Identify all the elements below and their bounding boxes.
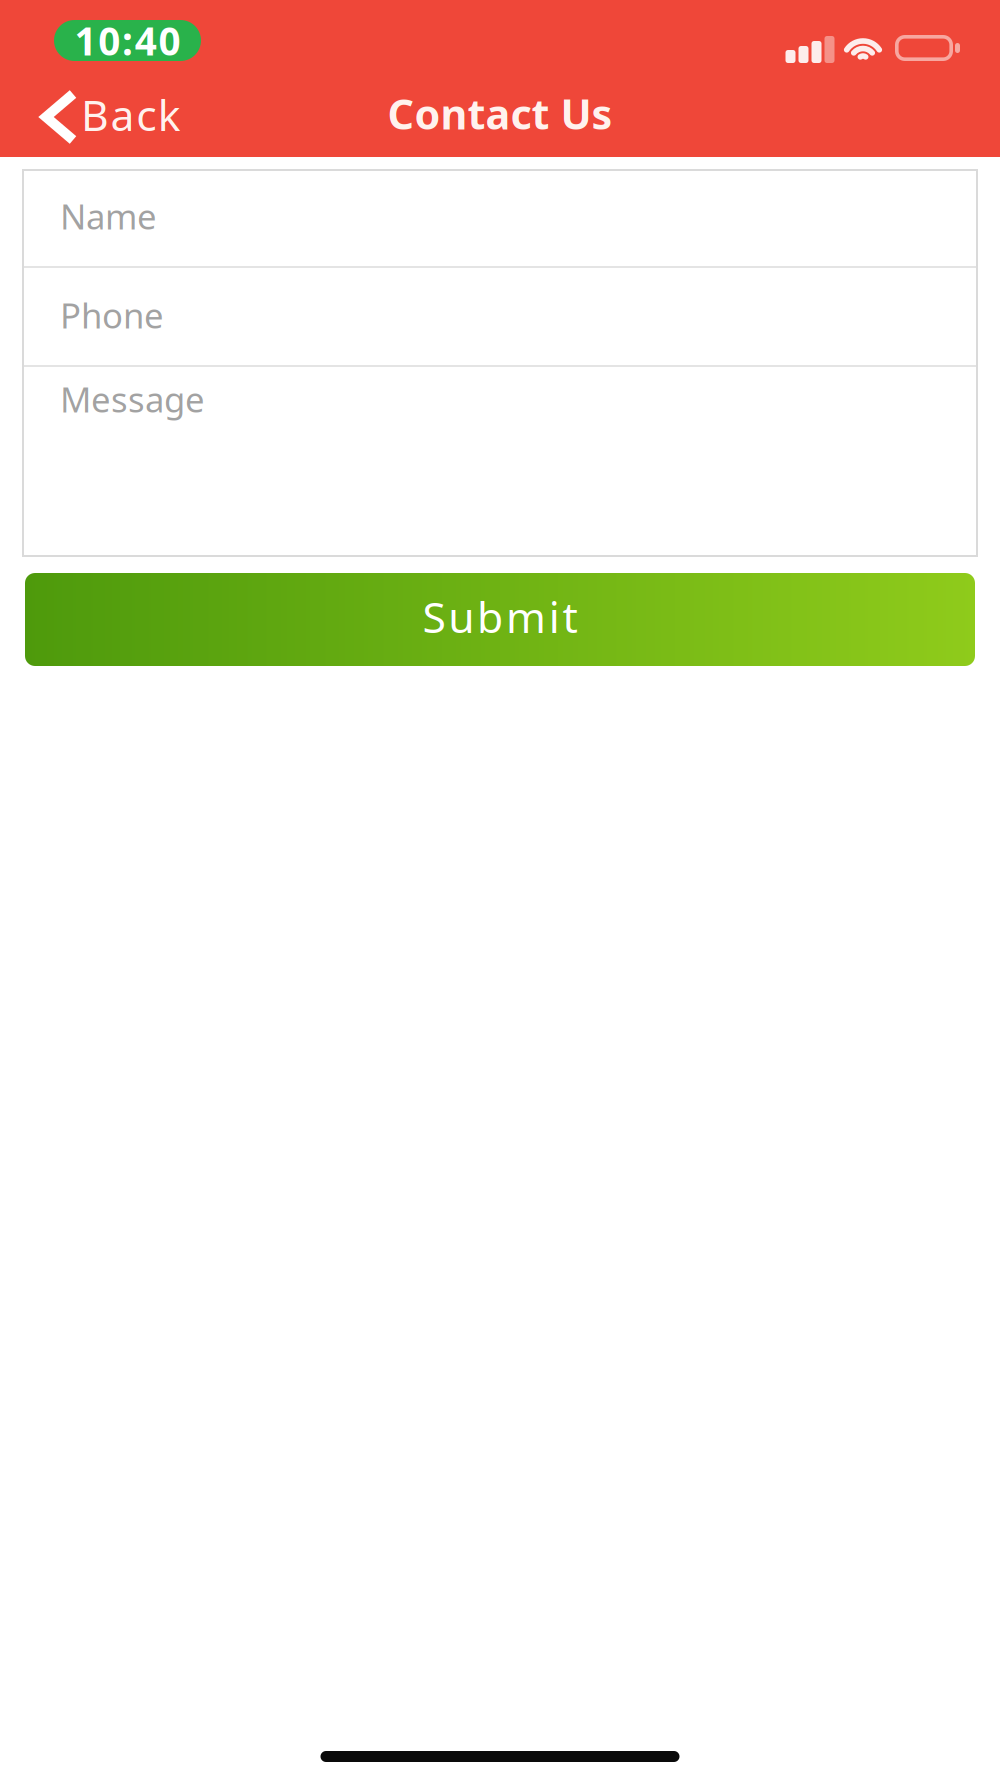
button[interactable]: Name [22, 169, 978, 266]
button[interactable]: Phone [22, 268, 978, 365]
staticText: Message [60, 376, 205, 422]
staticText: Name [60, 193, 157, 239]
staticText: Back [81, 86, 181, 143]
staticText: Phone [60, 292, 164, 338]
button[interactable]: Back [0, 78, 166, 157]
button[interactable]: Message [22, 367, 978, 557]
staticText: Submit [422, 588, 577, 645]
staticText: Contact Us [387, 86, 612, 141]
staticText: 10:40 [74, 15, 181, 66]
button[interactable]: Submit [25, 573, 975, 666]
